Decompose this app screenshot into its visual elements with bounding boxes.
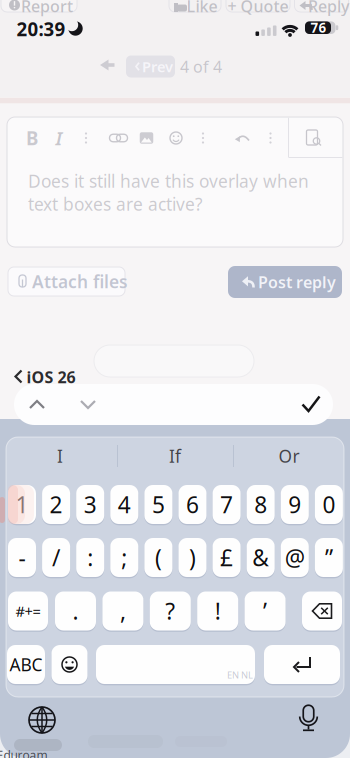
button[interactable]: 5 bbox=[144, 485, 172, 524]
staticText: : bbox=[87, 542, 93, 572]
button[interactable]: Report bbox=[1, 0, 81, 14]
button[interactable]: #+= bbox=[8, 591, 48, 630]
button[interactable]: Or bbox=[234, 443, 344, 469]
staticText: 76 bbox=[310, 19, 326, 36]
button[interactable]: Prev bbox=[126, 55, 175, 77]
button[interactable]: . bbox=[55, 591, 96, 630]
staticText: 4 bbox=[118, 489, 131, 519]
staticText: #+= bbox=[15, 601, 40, 621]
staticText: Eduroam bbox=[0, 747, 47, 758]
staticText: 0 bbox=[322, 489, 335, 519]
button[interactable]: + Quote bbox=[226, 0, 292, 14]
button[interactable]: ABC bbox=[7, 645, 45, 684]
staticText: EN NL bbox=[227, 669, 253, 681]
button[interactable]: Attach files bbox=[8, 267, 125, 296]
staticText: Or bbox=[278, 444, 299, 467]
button[interactable]: ( bbox=[144, 538, 172, 577]
staticText: 5 bbox=[152, 489, 165, 519]
button[interactable]: ” bbox=[315, 538, 343, 577]
staticText: ? bbox=[165, 596, 175, 626]
staticText: 7 bbox=[220, 489, 233, 519]
button[interactable]: Preview bbox=[301, 126, 327, 148]
staticText: 20:39 bbox=[16, 17, 65, 41]
staticText: ’ bbox=[263, 596, 267, 626]
staticText: Like bbox=[186, 0, 217, 17]
staticText: Post reply bbox=[258, 271, 336, 293]
staticText: If bbox=[169, 444, 181, 467]
button[interactable]: Return bbox=[264, 645, 340, 684]
button[interactable]: 1 bbox=[8, 485, 36, 524]
button[interactable]: Emoji bbox=[51, 645, 87, 684]
button[interactable]: Dictation bbox=[297, 705, 319, 733]
staticText: Report bbox=[21, 0, 73, 17]
button[interactable]: Insert link bbox=[106, 128, 130, 148]
staticText: I bbox=[57, 444, 63, 467]
button[interactable]: Italic bbox=[49, 128, 69, 148]
staticText: 3 bbox=[84, 489, 97, 519]
button[interactable]: 2 bbox=[42, 485, 70, 524]
button[interactable]: First page bbox=[99, 59, 114, 71]
button[interactable]: Undo bbox=[233, 129, 253, 149]
staticText: Reply bbox=[308, 0, 349, 17]
button[interactable]: 4 bbox=[110, 485, 138, 524]
button[interactable]: - bbox=[8, 538, 36, 577]
staticText: + Quote bbox=[227, 0, 288, 17]
staticText: ) bbox=[189, 542, 196, 572]
staticText: 1 bbox=[15, 489, 28, 519]
button[interactable]: £ bbox=[213, 538, 241, 577]
button[interactable]: ! bbox=[197, 591, 238, 630]
staticText: iOS 26 bbox=[26, 366, 75, 388]
button[interactable]: Reply bbox=[294, 0, 350, 14]
staticText: I bbox=[55, 126, 62, 150]
staticText: 6 bbox=[186, 489, 199, 519]
button[interactable]: / bbox=[42, 538, 70, 577]
button[interactable]: If bbox=[120, 443, 230, 469]
staticText: . bbox=[72, 596, 78, 626]
staticText: 2 bbox=[50, 489, 63, 519]
button[interactable]: 7 bbox=[213, 485, 241, 524]
button[interactable]: & bbox=[247, 538, 275, 577]
staticText: Does it still have this overlay when tex… bbox=[28, 169, 309, 215]
button[interactable]: Done bbox=[300, 396, 322, 412]
button[interactable]: Next keyboard bbox=[27, 705, 57, 735]
staticText: 4 of 4 bbox=[180, 56, 222, 77]
button[interactable]: Next field bbox=[78, 397, 98, 412]
button[interactable]: Back to iOS 26 bbox=[13, 369, 75, 384]
button[interactable]: More media options bbox=[196, 128, 210, 148]
button[interactable]: 9 bbox=[281, 485, 309, 524]
staticText: ( bbox=[155, 542, 162, 572]
button[interactable]: Delete bbox=[302, 591, 342, 630]
button[interactable]: I bbox=[5, 443, 115, 469]
button[interactable]: ; bbox=[110, 538, 138, 577]
button[interactable]: ) bbox=[178, 538, 206, 577]
button[interactable]: , bbox=[102, 591, 143, 630]
staticText: 9 bbox=[288, 489, 301, 519]
button[interactable]: : bbox=[76, 538, 104, 577]
button[interactable]: Insert image bbox=[136, 128, 156, 148]
button[interactable]: More options bbox=[263, 128, 277, 148]
button[interactable]: Insert emoji bbox=[167, 129, 185, 147]
button[interactable]: 3 bbox=[76, 485, 104, 524]
button[interactable]: 6 bbox=[178, 485, 206, 524]
staticText: Prev bbox=[142, 57, 173, 76]
button[interactable]: @ bbox=[281, 538, 309, 577]
staticText: / bbox=[52, 542, 60, 572]
staticText: @ bbox=[285, 542, 305, 572]
button[interactable]: Previous field bbox=[27, 397, 47, 412]
staticText: B bbox=[26, 126, 38, 150]
staticText: ABC bbox=[9, 653, 42, 676]
button[interactable]: Like bbox=[169, 0, 223, 14]
button[interactable]: ’ bbox=[245, 591, 286, 630]
staticText: , bbox=[120, 596, 126, 626]
staticText: Attach files bbox=[32, 270, 128, 293]
button[interactable]: Space bbox=[96, 645, 255, 684]
button[interactable]: Bold bbox=[22, 128, 42, 148]
staticText: 8 bbox=[254, 489, 267, 519]
button[interactable]: More text options bbox=[79, 128, 93, 148]
button[interactable]: 8 bbox=[247, 485, 275, 524]
staticText: & bbox=[252, 542, 269, 572]
button[interactable]: Post reply bbox=[228, 266, 342, 298]
button[interactable]: ? bbox=[150, 591, 191, 630]
staticText: ! bbox=[215, 596, 221, 626]
button[interactable]: 0 bbox=[315, 485, 343, 524]
